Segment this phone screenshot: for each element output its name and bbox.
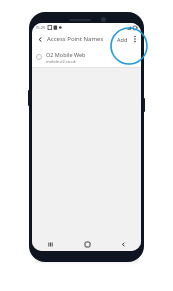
button[interactable]: Add [115, 34, 130, 45]
button[interactable]: Back [105, 242, 141, 247]
staticText: Add [117, 36, 128, 43]
button[interactable]: More options [131, 33, 138, 45]
staticText: Access Point Names [47, 35, 104, 43]
staticText: O2 Mobile Web [46, 51, 86, 58]
staticText: mobile.o2.co.uk [46, 59, 76, 64]
button[interactable]: Back [35, 34, 45, 44]
staticText: 15:25 [35, 25, 46, 30]
button[interactable]: Recents [32, 242, 69, 247]
button[interactable]: O2 Mobile Web [32, 46, 141, 68]
button[interactable]: Home [69, 242, 105, 247]
